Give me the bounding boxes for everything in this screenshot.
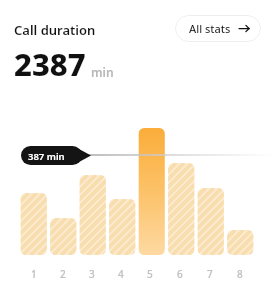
button[interactable]: All stats <box>175 15 261 42</box>
staticText: 7 <box>207 267 213 281</box>
staticText: 5 <box>147 267 153 281</box>
staticText: 8 <box>237 267 243 281</box>
staticText: 2387 <box>14 43 86 85</box>
staticText: 1 <box>31 267 37 281</box>
staticText: 6 <box>177 267 183 281</box>
staticText: 387 min <box>28 150 65 163</box>
staticText: All stats <box>189 21 231 36</box>
staticText: 2 <box>60 267 66 281</box>
staticText: 4 <box>118 267 124 281</box>
button[interactable]: Call duration bar chart <box>0 0 274 290</box>
staticText: 3 <box>89 267 95 281</box>
staticText: Call duration <box>14 21 96 39</box>
staticText: min <box>91 64 114 80</box>
